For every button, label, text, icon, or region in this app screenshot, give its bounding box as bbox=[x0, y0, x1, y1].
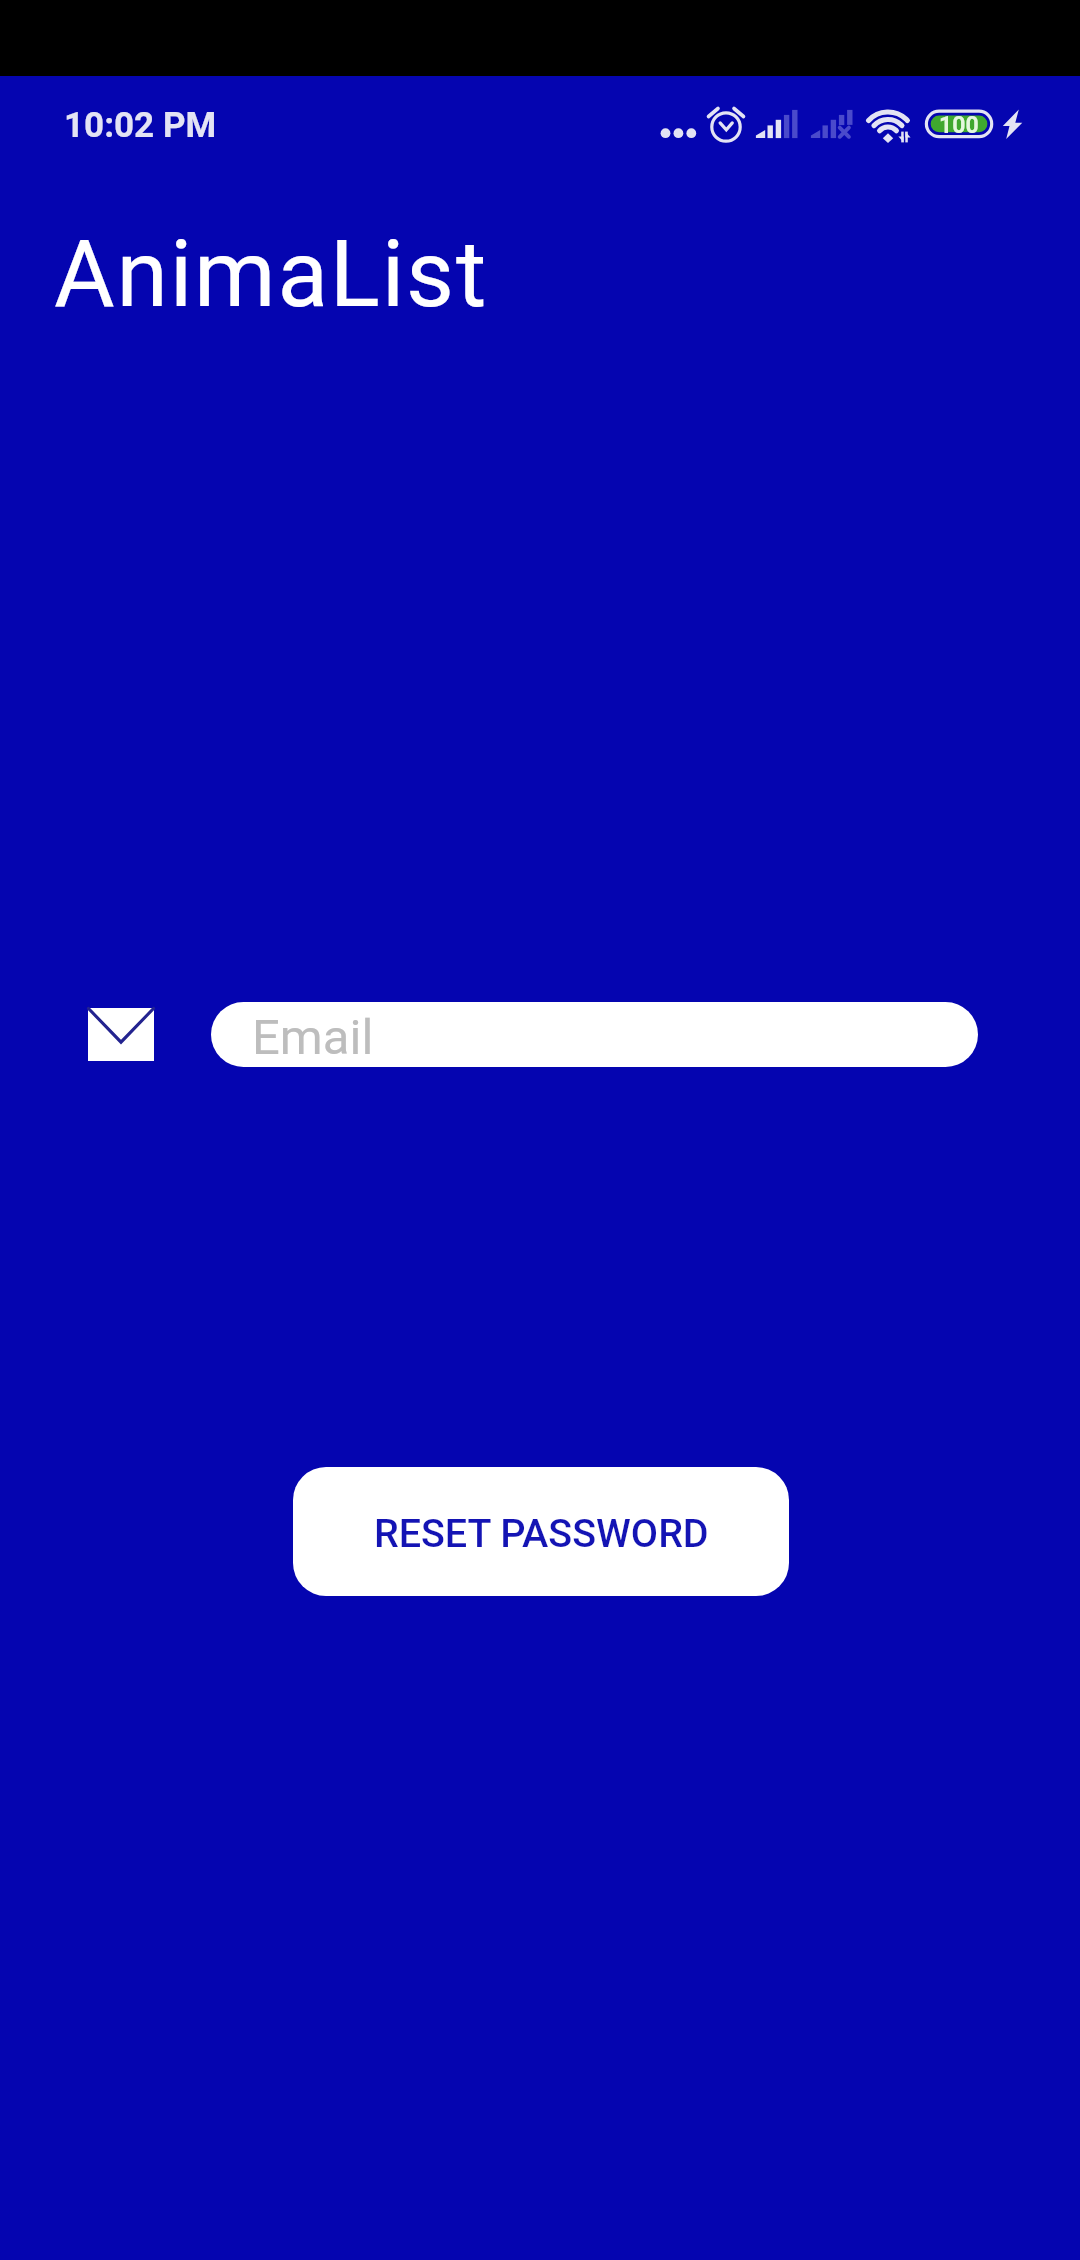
staticText: Email bbox=[252, 1009, 374, 1066]
staticText: 100 bbox=[939, 112, 979, 139]
staticText: 10:02 PM bbox=[64, 105, 217, 146]
button[interactable]: RESET PASSWORD bbox=[293, 1467, 789, 1596]
staticText: RESET PASSWORD bbox=[374, 1510, 709, 1556]
button[interactable]: Email bbox=[211, 1002, 978, 1067]
staticText: AnimaList bbox=[54, 220, 489, 329]
other: Email bbox=[88, 1008, 154, 1061]
